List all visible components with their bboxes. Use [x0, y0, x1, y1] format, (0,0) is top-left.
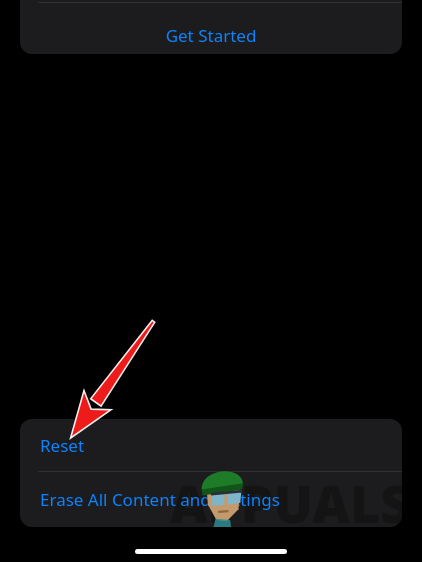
- button[interactable]: Get Started: [20, 0, 402, 54]
- staticText: Get Started: [20, 24, 402, 47]
- staticText: APPUALS: [170, 467, 402, 527]
- other: Annotation arrow pointing to Reset: [0, 0, 422, 562]
- button[interactable]: Reset: [20, 419, 402, 471]
- staticText: Reset: [40, 434, 85, 457]
- button[interactable]: Erase All Content and Settings: [20, 472, 402, 527]
- staticText: Erase All Content and Settings: [40, 488, 280, 511]
